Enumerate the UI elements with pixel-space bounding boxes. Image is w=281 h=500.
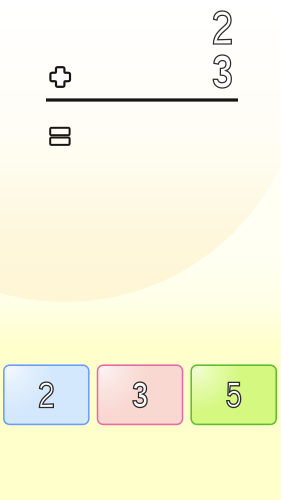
button[interactable]	[4, 365, 89, 424]
button[interactable]	[191, 365, 276, 424]
button[interactable]	[97, 365, 182, 424]
